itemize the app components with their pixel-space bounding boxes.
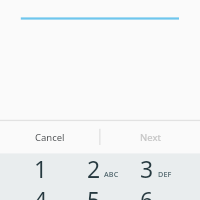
button[interactable]: 4: [15, 184, 67, 200]
button[interactable]: Cancel: [0, 121, 100, 153]
staticText: 1: [34, 153, 48, 184]
staticText: 2: [87, 153, 101, 184]
staticText: 5: [87, 184, 101, 200]
button[interactable]: 3: [120, 153, 173, 184]
button[interactable]: 5: [67, 184, 120, 200]
button[interactable]: PIN entry field: [0, 0, 200, 20]
button[interactable]: 2: [67, 153, 120, 184]
button[interactable]: 6: [120, 184, 173, 200]
staticText: 4: [34, 184, 48, 200]
button[interactable]: Next: [100, 121, 200, 153]
staticText: 3: [140, 153, 154, 184]
staticText: Next: [140, 131, 161, 144]
staticText: ABC: [104, 169, 119, 179]
staticText: DEF: [158, 169, 172, 179]
staticText: Cancel: [35, 131, 65, 144]
button[interactable]: 1: [15, 153, 67, 184]
staticText: 6: [140, 184, 154, 200]
